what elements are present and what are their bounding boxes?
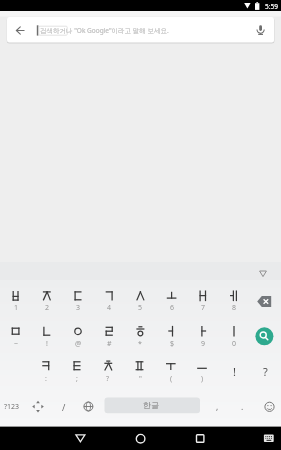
button[interactable]: [156, 284, 187, 319]
staticText: 8: [232, 303, 237, 313]
staticText: 9: [201, 339, 206, 349]
button[interactable]: [249, 354, 281, 389]
staticText: ?: [106, 374, 110, 384]
staticText: @: [75, 339, 82, 349]
staticText: ): [201, 374, 204, 384]
button[interactable]: [0, 319, 31, 354]
button[interactable]: [125, 284, 156, 319]
staticText: ?: [263, 364, 268, 379]
button[interactable]: [105, 398, 201, 414]
staticText: ": [139, 374, 142, 384]
button[interactable]: [187, 284, 218, 319]
staticText: 검색하거나 "Ok Google"이라고 말해 보세요.: [40, 26, 169, 35]
staticText: ?123: [4, 402, 20, 412]
staticText: !: [46, 339, 48, 349]
button[interactable]: [218, 319, 249, 354]
button[interactable]: [155, 354, 186, 389]
button[interactable]: [218, 354, 249, 389]
button[interactable]: [125, 319, 156, 354]
button[interactable]: [186, 427, 216, 450]
button[interactable]: [0, 284, 31, 319]
button[interactable]: [62, 284, 93, 319]
staticText: .: [241, 401, 244, 413]
staticText: :: [45, 374, 47, 384]
button[interactable]: [7, 17, 274, 43]
button[interactable]: [156, 319, 187, 354]
staticText: 2: [45, 303, 50, 313]
staticText: ,: [216, 401, 219, 413]
button[interactable]: [124, 354, 155, 389]
button[interactable]: [93, 354, 124, 389]
staticText: (: [170, 374, 173, 384]
button[interactable]: [251, 264, 277, 280]
button[interactable]: [31, 319, 62, 354]
button[interactable]: [76, 389, 102, 427]
staticText: 4: [107, 303, 112, 313]
staticText: /: [62, 401, 66, 413]
button[interactable]: [62, 319, 93, 354]
button[interactable]: [126, 427, 156, 450]
button[interactable]: [30, 354, 61, 389]
staticText: *: [138, 339, 142, 349]
button[interactable]: [187, 319, 218, 354]
button[interactable]: [94, 284, 125, 319]
button[interactable]: [31, 284, 62, 319]
staticText: 7: [201, 303, 206, 313]
staticText: #: [107, 339, 112, 349]
button[interactable]: [229, 389, 255, 427]
staticText: 5:59: [265, 2, 278, 11]
button[interactable]: [66, 427, 96, 450]
button[interactable]: [94, 319, 125, 354]
button[interactable]: [12, 23, 30, 38]
button[interactable]: [61, 354, 92, 389]
staticText: $: [170, 339, 175, 349]
staticText: 1: [14, 303, 19, 313]
button[interactable]: [51, 389, 76, 427]
button[interactable]: [254, 427, 281, 450]
button[interactable]: [218, 284, 249, 319]
staticText: ~: [14, 339, 19, 349]
staticText: 6: [170, 303, 175, 313]
staticText: !: [233, 364, 236, 379]
button[interactable]: [252, 23, 270, 38]
staticText: 5: [138, 303, 143, 313]
staticText: 한글: [143, 400, 159, 410]
button[interactable]: [26, 389, 51, 427]
button[interactable]: [249, 319, 281, 354]
staticText: 3: [76, 303, 81, 313]
button[interactable]: [0, 389, 26, 427]
button[interactable]: [249, 284, 281, 319]
staticText: 0: [232, 339, 237, 349]
button[interactable]: [255, 389, 281, 427]
button[interactable]: [205, 389, 229, 427]
button[interactable]: [186, 354, 217, 389]
staticText: ;: [76, 374, 78, 384]
